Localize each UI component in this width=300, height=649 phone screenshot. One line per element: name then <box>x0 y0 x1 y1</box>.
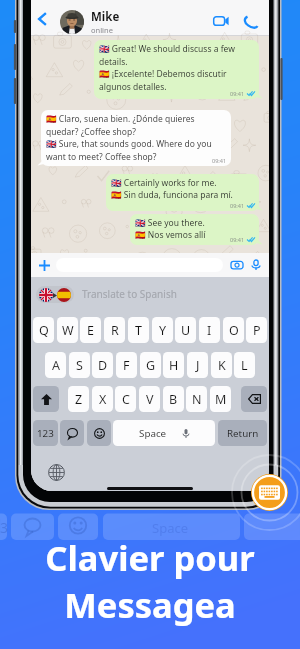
staticText: F <box>123 357 130 374</box>
button[interactable]: Back <box>35 12 49 26</box>
button[interactable]: R <box>104 317 125 343</box>
staticText: H <box>169 357 179 374</box>
button[interactable]: T <box>128 317 149 343</box>
button[interactable]: Open keyboard <box>251 474 288 511</box>
button[interactable]: A <box>45 352 66 378</box>
button[interactable]: Q <box>33 317 54 343</box>
button[interactable]: Numbers <box>33 420 58 446</box>
button[interactable]: X <box>92 386 113 412</box>
staticText: Space <box>152 519 188 537</box>
staticText: T <box>135 322 142 339</box>
button[interactable]: P <box>246 317 267 343</box>
button[interactable]: Voice message <box>249 258 263 272</box>
button[interactable]: F <box>116 352 137 378</box>
staticText: J <box>196 357 200 374</box>
staticText: G <box>146 357 156 374</box>
staticText: R <box>111 322 119 339</box>
staticText: O <box>229 322 239 339</box>
staticText: 🇪🇸 Nos vemos allí <box>135 229 206 241</box>
button[interactable]: C <box>115 386 136 412</box>
staticText: S <box>76 357 83 374</box>
staticText: I <box>207 322 212 339</box>
button[interactable]: W <box>57 317 78 343</box>
staticText: K <box>218 357 226 374</box>
staticText: X <box>99 391 107 408</box>
staticText: 09:41 <box>212 157 227 164</box>
staticText: W <box>62 322 74 339</box>
staticText: 🇬🇧 See you there. <box>135 217 205 229</box>
staticText: Translate to Spanish <box>82 287 177 301</box>
button[interactable]: S <box>69 352 90 378</box>
staticText: E <box>87 322 94 339</box>
staticText: B <box>169 391 178 408</box>
button[interactable]: U <box>175 317 196 343</box>
button[interactable]: V <box>139 386 160 412</box>
button[interactable]: Shift <box>33 386 59 412</box>
staticText: 🇬🇧 Certainly works for me. <box>111 177 217 189</box>
button[interactable]: Space <box>113 420 215 446</box>
staticText: D <box>98 357 108 374</box>
staticText: U <box>181 322 191 339</box>
button[interactable]: Z <box>68 386 89 412</box>
staticText: A <box>52 357 60 374</box>
staticText: 🇬🇧 Great! We should discuss a few detail… <box>99 43 254 68</box>
staticText: 09:41 <box>230 90 245 97</box>
button[interactable]: K <box>211 352 232 378</box>
button[interactable]: O <box>223 317 244 343</box>
staticText: C <box>122 391 130 408</box>
button[interactable]: H <box>163 352 184 378</box>
button[interactable]: D <box>92 352 113 378</box>
button[interactable]: L <box>234 352 255 378</box>
button[interactable]: Voice call <box>241 13 259 31</box>
staticText: Clavier pour <box>45 534 255 581</box>
button[interactable]: B <box>163 386 184 412</box>
button[interactable]: Chat keyboard <box>60 420 84 446</box>
button[interactable]: I <box>199 317 220 343</box>
button[interactable]: Emoji <box>87 420 111 446</box>
staticText: 3 <box>0 518 9 537</box>
staticText: V <box>146 391 154 408</box>
staticText: Z <box>75 391 83 408</box>
staticText: N <box>192 391 202 408</box>
staticText: 09:41 <box>230 202 245 209</box>
button[interactable]: E <box>80 317 101 343</box>
button[interactable]: Switch languages <box>36 286 74 303</box>
button[interactable]: Camera <box>230 258 244 272</box>
button[interactable]: G <box>140 352 161 378</box>
button[interactable]: J <box>187 352 208 378</box>
button[interactable]: Attach <box>37 258 51 272</box>
staticText: online <box>91 25 113 35</box>
staticText: Return <box>227 427 259 440</box>
staticText: L <box>241 357 248 374</box>
staticText: Q <box>39 322 49 339</box>
staticText: 🇪🇸 Claro, suena bien. ¿Dónde quieres que… <box>46 113 226 138</box>
staticText: Messagea <box>64 581 236 628</box>
staticText: 🇪🇸 Sin duda, funciona para mí. <box>111 189 233 201</box>
button[interactable]: Backspace <box>241 386 267 412</box>
button[interactable]: Return <box>218 420 267 446</box>
button[interactable]: Video call <box>211 14 230 28</box>
staticText: 🇬🇧 Sure, that sounds good. Where do you … <box>46 138 226 163</box>
staticText: Y <box>159 322 167 339</box>
button[interactable]: Y <box>152 317 173 343</box>
staticText: Mike <box>91 9 120 25</box>
button[interactable]: Change language <box>48 464 65 481</box>
staticText: 123 <box>37 427 54 440</box>
staticText: Space <box>139 427 167 440</box>
staticText: M <box>215 391 227 408</box>
staticText: 🇪🇸 ¡Excelente! Debemos discutir algunos … <box>99 68 254 93</box>
button[interactable]: N <box>186 386 207 412</box>
button[interactable]: M <box>210 386 231 412</box>
staticText: 09:41 <box>230 236 245 243</box>
staticText: P <box>253 322 261 339</box>
